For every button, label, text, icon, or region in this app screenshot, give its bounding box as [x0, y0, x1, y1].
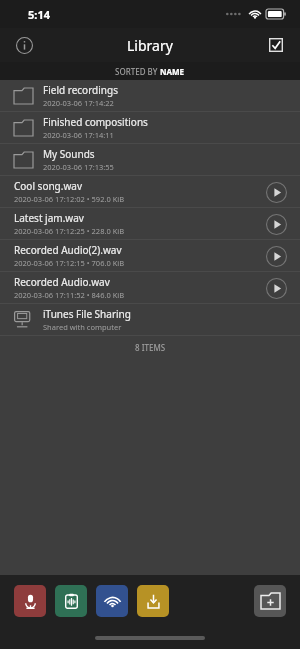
staticText: 2020-03-06 17:14:11: [43, 130, 114, 140]
staticText: Library: [127, 36, 173, 55]
button[interactable]: My Sounds: [0, 144, 300, 175]
button[interactable]: Import: [137, 585, 169, 617]
button[interactable]: Wi-Fi transfer: [96, 585, 128, 617]
button[interactable]: Finished compositions: [0, 112, 300, 143]
staticText: Finished compositions: [43, 115, 148, 129]
staticText: SORTED BY: [115, 66, 160, 77]
button[interactable]: Field recordings: [0, 80, 300, 111]
staticText: 8 ITEMS: [135, 342, 166, 353]
staticText: NAME: [160, 66, 185, 77]
button[interactable]: Play Recorded Audio(2).wav: [264, 244, 288, 268]
staticText: Recorded Audio(2).wav: [14, 243, 122, 257]
button[interactable]: New folder: [254, 585, 286, 617]
button[interactable]: Recorded Audio.wav: [0, 272, 300, 303]
staticText: Cool song.wav: [14, 179, 82, 193]
button[interactable]: SORTED BY: [0, 62, 300, 80]
staticText: Field recordings: [43, 83, 118, 97]
staticText: 2020-03-06 17:12:02 • 592.0 KiB: [14, 194, 125, 204]
staticText: 2020-03-06 17:12:25 • 228.0 KiB: [14, 226, 125, 236]
staticText: 2020-03-06 17:13:55: [43, 162, 114, 172]
button[interactable]: Recorded Audio(2).wav: [0, 240, 300, 271]
staticText: Recorded Audio.wav: [14, 275, 110, 289]
button[interactable]: Cool song.wav: [0, 176, 300, 207]
staticText: 2020-03-06 17:14:22: [43, 98, 114, 108]
staticText: My Sounds: [43, 147, 95, 161]
button[interactable]: Select items: [260, 29, 292, 61]
staticText: Latest jam.wav: [14, 211, 84, 225]
button[interactable]: Latest jam.wav: [0, 208, 300, 239]
button[interactable]: iTunes File Sharing: [0, 304, 300, 335]
button[interactable]: Play Cool song.wav: [264, 180, 288, 204]
staticText: 2020-03-06 17:11:52 • 846.0 KiB: [14, 290, 125, 300]
staticText: 5:14: [28, 7, 50, 22]
button[interactable]: Record: [14, 585, 46, 617]
button[interactable]: Play Latest jam.wav: [264, 212, 288, 236]
button[interactable]: Play Recorded Audio.wav: [264, 276, 288, 300]
staticText: 2020-03-06 17:12:15 • 706.0 KiB: [14, 258, 125, 268]
staticText: Shared with computer: [43, 322, 122, 332]
button[interactable]: Info: [8, 29, 40, 61]
staticText: iTunes File Sharing: [43, 307, 131, 321]
button[interactable]: Clipboard: [55, 585, 87, 617]
